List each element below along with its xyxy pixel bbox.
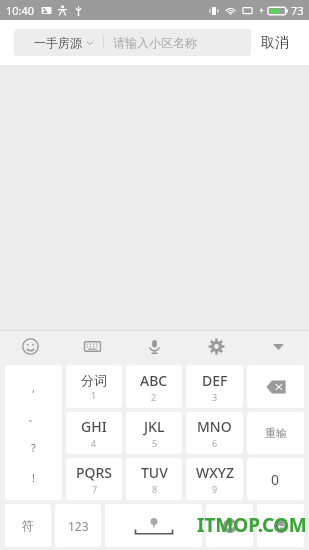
button[interactable]: 一手房源 xyxy=(14,29,251,56)
staticText: 6 xyxy=(212,437,218,449)
staticText: 符 xyxy=(22,518,34,533)
button[interactable]: Return xyxy=(206,504,253,547)
staticText: TUV xyxy=(141,463,168,482)
staticText: JKL xyxy=(144,417,165,436)
button[interactable]: 分词 xyxy=(66,365,122,408)
button[interactable]: Emoji xyxy=(0,331,61,362)
button[interactable]: 取消 xyxy=(251,20,299,65)
button[interactable]: DEF xyxy=(186,365,243,408)
staticText: ABC xyxy=(140,371,168,390)
button[interactable]: 重输 xyxy=(247,412,304,454)
staticText: DEF xyxy=(202,371,228,390)
staticText: 9 xyxy=(212,483,218,495)
staticText: 。 xyxy=(28,410,39,424)
staticText: 取消 xyxy=(261,34,289,52)
staticText: ! xyxy=(32,470,35,485)
staticText: 10:40 xyxy=(6,3,35,18)
button[interactable]: Backspace xyxy=(247,365,304,408)
button[interactable]: JKL xyxy=(126,412,182,454)
staticText: 1 xyxy=(91,389,97,401)
staticText: 请输入小区名称 xyxy=(113,35,197,50)
staticText: ? xyxy=(31,440,36,455)
staticText: PQRS xyxy=(76,463,113,482)
staticText: ITMOP.COM xyxy=(197,512,307,538)
button[interactable]: ABC xyxy=(126,365,182,408)
staticText: MNO xyxy=(197,417,232,436)
staticText: 分词 xyxy=(81,372,107,388)
button[interactable]: GHI xyxy=(66,412,122,454)
button[interactable]: punctuation xyxy=(5,365,62,500)
staticText: 0 xyxy=(271,470,280,489)
button[interactable]: 符 xyxy=(5,504,51,547)
button[interactable]: 0 xyxy=(247,458,304,500)
staticText: 7 xyxy=(92,483,98,495)
button[interactable]: TUV xyxy=(126,458,182,500)
staticText: 一手房源 xyxy=(34,35,82,50)
staticText: 4 xyxy=(91,437,97,449)
staticText: 123 xyxy=(68,518,89,534)
staticText: 8 xyxy=(152,483,158,495)
staticText: , xyxy=(32,380,35,395)
staticText: 3 xyxy=(212,391,218,403)
staticText: 重输 xyxy=(265,426,287,440)
button[interactable]: Settings xyxy=(185,331,247,362)
staticText: 5 xyxy=(152,437,158,449)
button[interactable]: Enter xyxy=(257,504,304,547)
staticText: GHI xyxy=(81,417,107,436)
button[interactable]: WXYZ xyxy=(186,458,243,500)
button[interactable]: MNO xyxy=(186,412,243,454)
button[interactable]: 123 xyxy=(55,504,101,547)
staticText: 73 xyxy=(291,3,304,18)
button[interactable]: PQRS xyxy=(66,458,122,500)
button[interactable]: Hide keyboard xyxy=(247,331,309,362)
staticText: 2 xyxy=(151,391,157,403)
button[interactable]: Voice input xyxy=(123,331,185,362)
button[interactable]: Space xyxy=(105,504,202,547)
button[interactable]: Keyboard layout xyxy=(61,331,123,362)
staticText: WXYZ xyxy=(196,463,234,482)
